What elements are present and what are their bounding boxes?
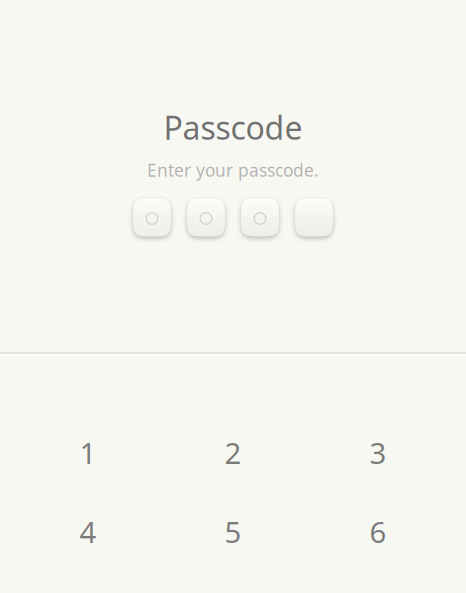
button[interactable]: 2: [160, 413, 305, 492]
button[interactable]: 6: [305, 492, 450, 571]
button[interactable]: 3: [305, 413, 450, 492]
staticText: Enter your passcode.: [147, 158, 319, 181]
staticText: 1: [79, 433, 96, 472]
staticText: Passcode: [163, 106, 302, 148]
staticText: 2: [224, 433, 241, 472]
button[interactable]: 1: [15, 413, 160, 492]
staticText: 3: [369, 433, 386, 472]
staticText: 6: [369, 512, 386, 551]
button[interactable]: 4: [15, 492, 160, 571]
button[interactable]: 5: [160, 492, 305, 571]
staticText: 4: [79, 512, 96, 551]
staticText: 5: [224, 512, 241, 551]
